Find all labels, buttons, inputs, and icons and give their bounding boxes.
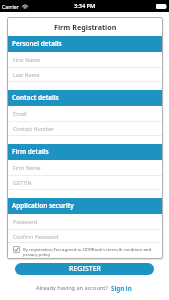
staticText: Personel details <box>12 39 62 48</box>
button[interactable]: Email <box>7 106 163 122</box>
button[interactable]: REGISTER <box>15 263 154 275</box>
button[interactable]: Last Name <box>7 68 163 82</box>
button[interactable]: By registration,You agreed to ODRBook's … <box>7 243 163 259</box>
staticText: Sign in <box>111 284 132 292</box>
other: Wi-Fi signal <box>22 3 28 9</box>
staticText: Firm Name <box>13 164 41 171</box>
staticText: Contact details <box>12 93 59 102</box>
staticText: REGISTER <box>69 264 101 274</box>
staticText: Confirm Password <box>13 233 59 240</box>
staticText: 3:34 PM <box>74 2 96 10</box>
staticText: Carrier <box>2 3 19 10</box>
button[interactable]: Confirm Password <box>7 230 163 243</box>
staticText: First Name <box>13 56 41 63</box>
staticText: GSTTIN <box>13 179 32 186</box>
button[interactable]: Contact Number <box>7 122 163 136</box>
other: Battery full <box>156 4 167 9</box>
button[interactable]: Sign in <box>110 283 133 293</box>
staticText: Last Name <box>13 71 40 78</box>
staticText: Firm Registration <box>54 22 117 32</box>
button[interactable]: Firm Name <box>7 160 163 176</box>
staticText: Email <box>13 110 27 117</box>
staticText: By registration,You agreed to ODRBook's … <box>23 246 159 257</box>
button[interactable]: Password <box>7 214 163 230</box>
staticText: Contact Number <box>13 125 55 132</box>
staticText: Already having an account? <box>36 284 108 292</box>
staticText: Firm details <box>12 147 49 156</box>
button[interactable]: GSTTIN <box>7 176 163 190</box>
button[interactable]: First Name <box>7 52 163 68</box>
staticText: Application security <box>12 201 74 210</box>
staticText: Password <box>13 218 37 225</box>
